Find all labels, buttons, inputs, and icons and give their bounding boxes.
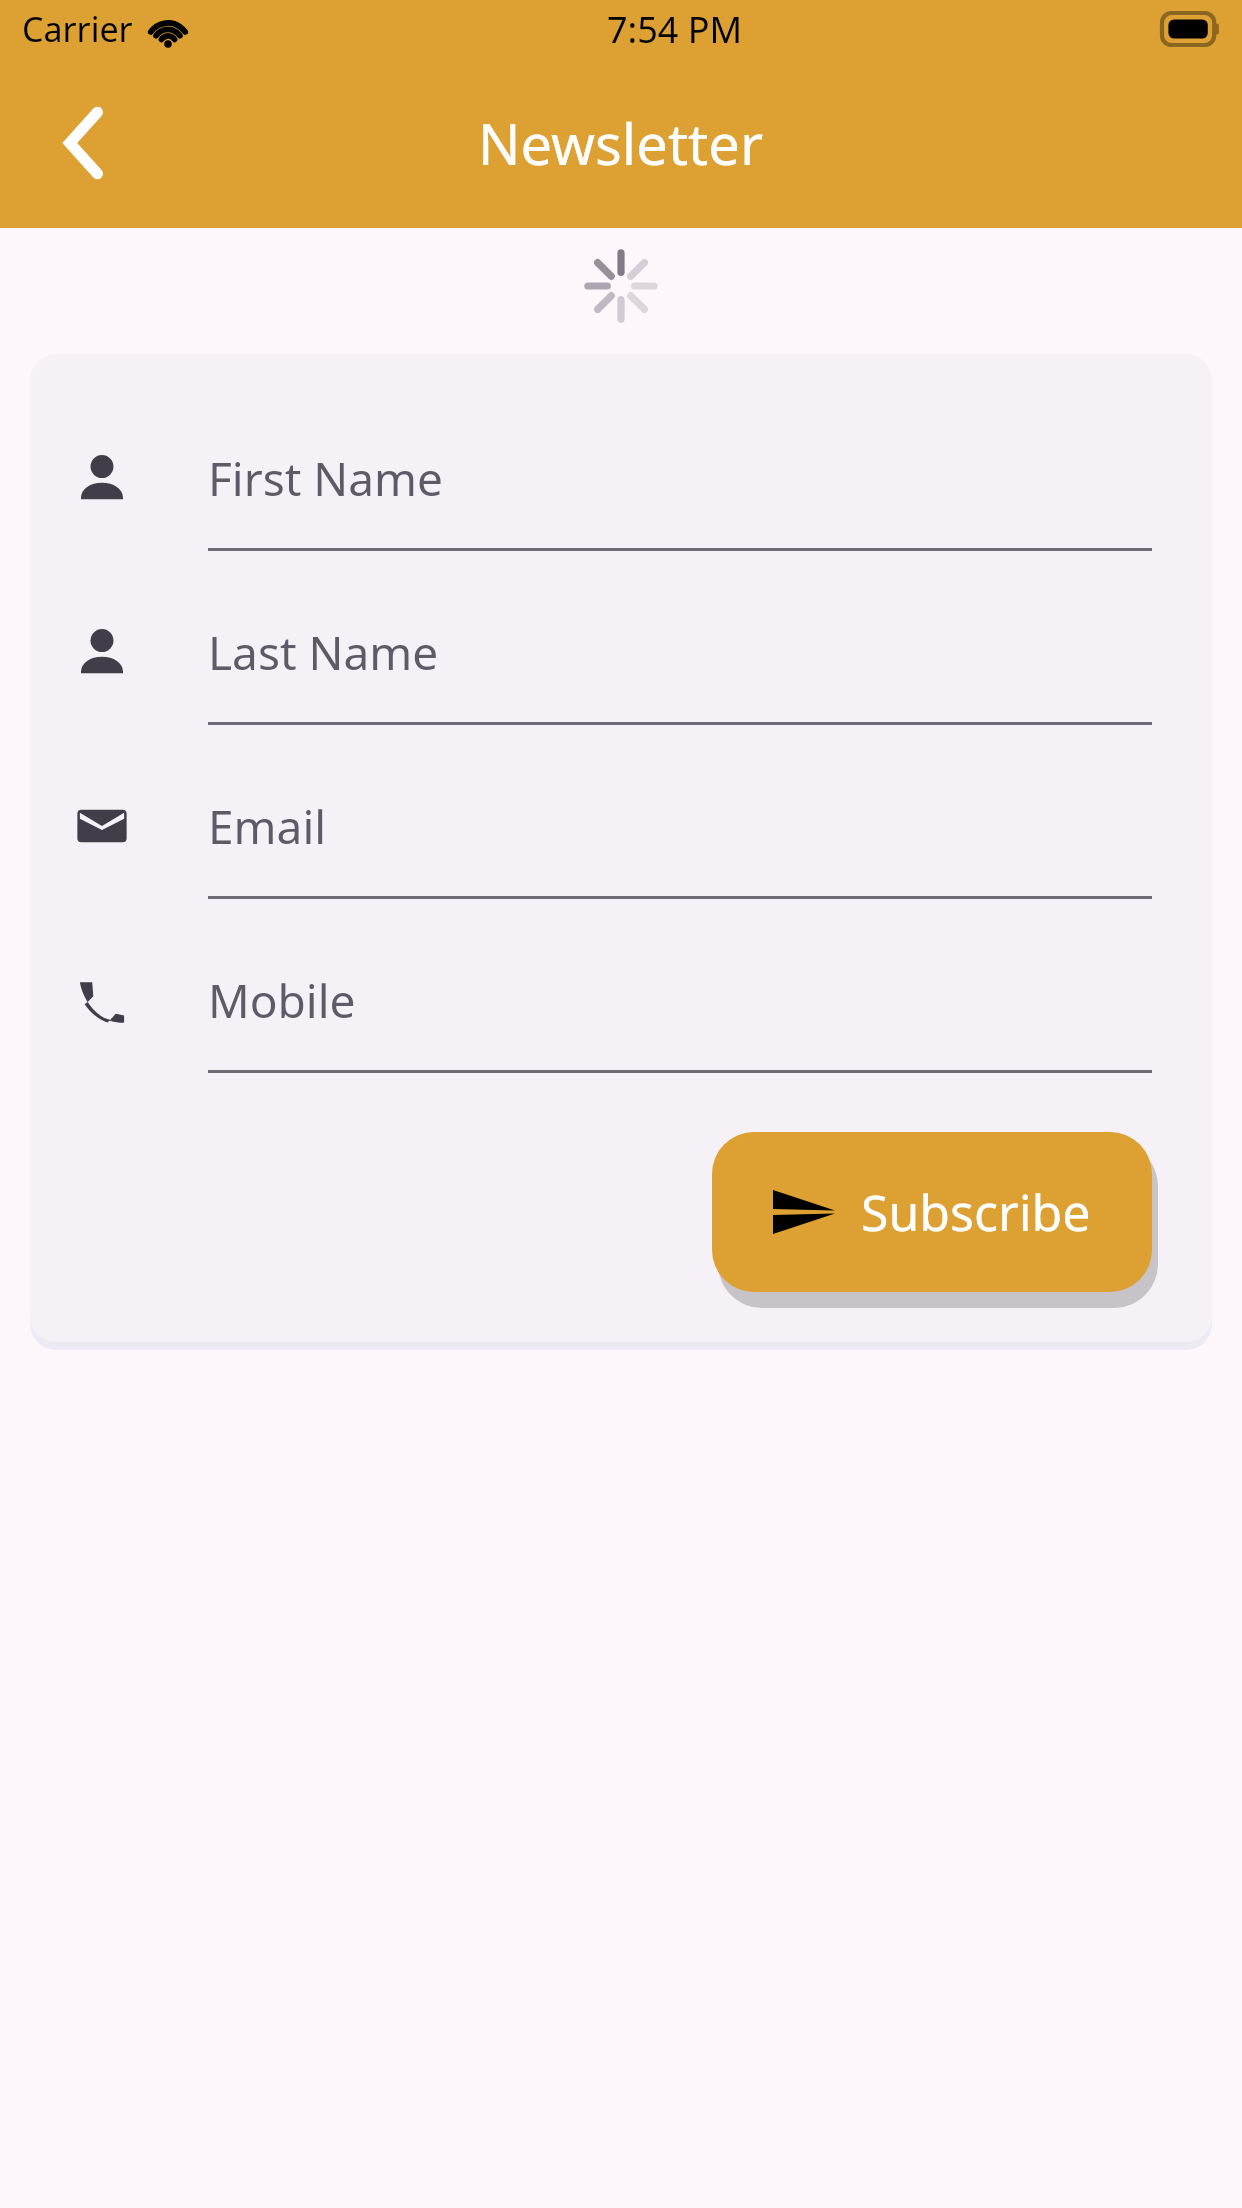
staticText: Last Name xyxy=(208,621,439,684)
staticText: First Name xyxy=(208,447,444,510)
staticText: 7:54 PM xyxy=(607,5,743,54)
button[interactable]: Email xyxy=(30,774,1212,924)
button[interactable]: Back xyxy=(30,95,138,191)
staticText: Newsletter xyxy=(478,105,764,181)
staticText: Email xyxy=(208,795,327,858)
button[interactable]: Last Name xyxy=(30,600,1212,750)
button[interactable]: Subscribe xyxy=(712,1132,1152,1292)
button[interactable]: Mobile xyxy=(30,948,1212,1098)
button[interactable]: First Name xyxy=(30,426,1212,576)
staticText: Subscribe xyxy=(861,1178,1091,1246)
staticText: Carrier xyxy=(22,6,133,52)
staticText: Mobile xyxy=(208,969,356,1032)
